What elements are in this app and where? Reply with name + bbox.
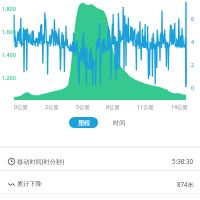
- button[interactable]: 里程: [69, 117, 98, 128]
- staticText: 1,600: [2, 28, 16, 35]
- button[interactable]: 累计下降: [0, 177, 200, 191]
- staticText: 时间: [113, 119, 126, 127]
- staticText: 4: [191, 38, 195, 45]
- staticText: 2: [191, 61, 195, 68]
- staticText: 11公里: [137, 103, 154, 110]
- staticText: 1,800: [2, 5, 16, 12]
- button[interactable]: 时间: [106, 117, 132, 128]
- staticText: 0公里: [14, 103, 28, 110]
- button[interactable]: 移动时间(时分秒): [0, 154, 200, 168]
- staticText: 5:38:30: [172, 157, 194, 165]
- staticText: 14公里: [171, 103, 188, 110]
- staticText: 6: [191, 15, 195, 22]
- staticText: 0: [191, 84, 195, 91]
- staticText: 2公里: [45, 103, 59, 110]
- staticText: 1,400: [2, 51, 16, 58]
- staticText: 8公里: [106, 103, 120, 110]
- staticText: 累计下降: [17, 180, 42, 188]
- staticText: 1,200: [2, 74, 16, 81]
- staticText: 移动时间(时分秒): [17, 157, 65, 165]
- staticText: 里程: [78, 119, 90, 127]
- staticText: 874米: [177, 180, 194, 188]
- staticText: 5公里: [76, 103, 90, 110]
